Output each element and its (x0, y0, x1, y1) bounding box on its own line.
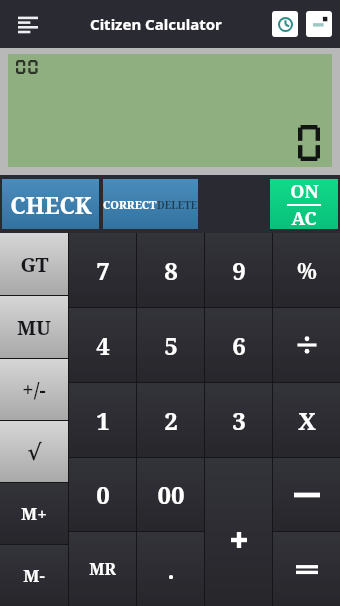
button[interactable]: MR (69, 532, 136, 606)
staticText: +/- (22, 376, 46, 403)
button[interactable]: CHECK (2, 179, 99, 229)
button[interactable]: 6 (205, 308, 272, 382)
staticText: Citizen Calculator (90, 14, 222, 34)
button[interactable] (273, 308, 340, 382)
staticText: 3 (232, 404, 246, 437)
button[interactable]: √ (0, 421, 68, 482)
button[interactable]: 3 (205, 383, 272, 457)
button[interactable]: ON (270, 179, 338, 229)
button[interactable]: Plus (205, 458, 272, 606)
staticText: M- (23, 564, 45, 587)
staticText: 0 (96, 478, 110, 511)
staticText: 5 (164, 329, 178, 362)
button[interactable]: CORRECT (103, 179, 198, 229)
staticText: CORRECT (103, 197, 157, 212)
button[interactable]: 00 (137, 458, 204, 531)
button[interactable]: Equals (273, 532, 340, 606)
button[interactable]: History (272, 11, 298, 37)
button[interactable]: M- (0, 545, 68, 606)
staticText: √ (27, 439, 42, 465)
button[interactable]: 4 (69, 308, 136, 382)
staticText: 7 (96, 254, 110, 287)
button[interactable]: +/- (0, 359, 68, 420)
button[interactable]: Menu (12, 8, 44, 40)
button[interactable]: 7 (69, 233, 136, 307)
staticText: 1 (96, 404, 110, 437)
staticText: 9 (232, 254, 246, 287)
button[interactable]: 9 (205, 233, 272, 307)
button[interactable]: 8 (137, 233, 204, 307)
staticText: GT (20, 251, 49, 278)
staticText: DELETE (157, 198, 198, 212)
staticText: 6 (232, 329, 246, 362)
staticText: 00 (157, 478, 185, 511)
button[interactable]: % (273, 233, 340, 307)
button[interactable]: 1 (69, 383, 136, 457)
staticText: X (298, 404, 316, 437)
staticText: % (297, 255, 317, 285)
staticText: . (167, 553, 175, 586)
staticText: 8 (164, 254, 178, 287)
button[interactable]: Minus (273, 458, 340, 531)
button[interactable]: MU (0, 296, 68, 358)
staticText: AC (291, 206, 317, 229)
staticText: MU (17, 314, 51, 341)
button[interactable]: 0 (69, 458, 136, 531)
button[interactable]: Save (306, 11, 332, 37)
button[interactable]: X (273, 383, 340, 457)
staticText: 4 (96, 329, 110, 362)
staticText: MR (89, 558, 116, 580)
button[interactable]: 2 (137, 383, 204, 457)
staticText: CHECK (10, 189, 92, 220)
button[interactable]: M+ (0, 483, 68, 544)
staticText: ON (290, 179, 319, 204)
staticText: M+ (21, 502, 47, 525)
button[interactable]: GT (0, 233, 68, 295)
button[interactable]: . (137, 532, 204, 606)
staticText: 2 (164, 404, 178, 437)
button[interactable]: 5 (137, 308, 204, 382)
